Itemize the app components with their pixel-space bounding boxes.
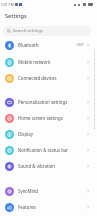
staticText: Mobile network — [18, 59, 51, 65]
button[interactable]: SyncMind — [0, 183, 97, 199]
staticText: Display — [18, 131, 33, 137]
button[interactable]: Connected devices — [0, 70, 97, 86]
staticText: 5:01 PM — [1, 2, 14, 7]
staticText: SyncMind — [18, 188, 38, 194]
button[interactable]: Bluetooth — [0, 37, 97, 53]
button[interactable]: Features — [0, 199, 97, 215]
staticText: Connected devices — [18, 75, 57, 81]
staticText: Bluetooth — [18, 42, 39, 48]
button[interactable]: Mobile network — [0, 54, 97, 70]
button[interactable]: Home screen settings — [0, 110, 97, 126]
staticText: Off — [77, 42, 84, 48]
staticText: Notification & status bar — [18, 147, 69, 153]
staticText: Personalization settings — [18, 99, 68, 105]
staticText: Sound & vibration — [18, 163, 56, 169]
staticText: Search settings — [13, 28, 43, 34]
button[interactable]: Sound & vibration — [0, 158, 97, 174]
staticText: Features — [18, 204, 36, 210]
button[interactable]: Personalization settings — [0, 94, 97, 110]
staticText: Home screen settings — [18, 115, 63, 121]
button[interactable]: Notification & status bar — [0, 142, 97, 158]
staticText: Settings — [5, 12, 27, 20]
button[interactable]: Display — [0, 126, 97, 142]
button[interactable]: Search settings — [3, 26, 91, 36]
